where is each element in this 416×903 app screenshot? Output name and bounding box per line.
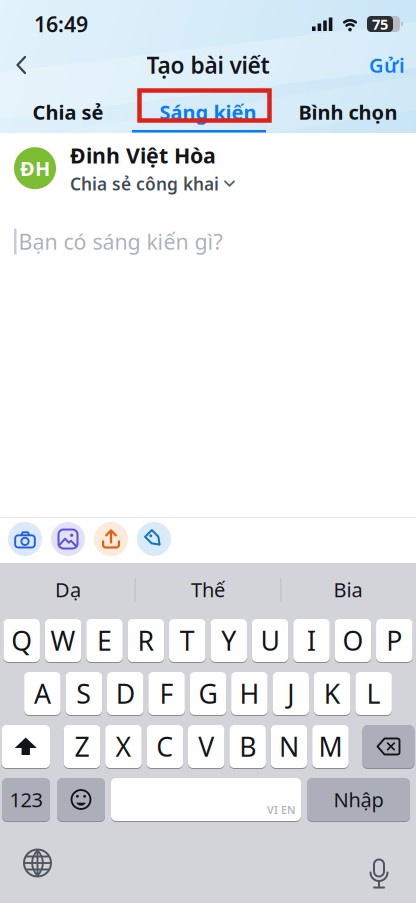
staticText: Tạo bài viết	[146, 50, 269, 80]
staticText: P	[386, 623, 402, 658]
button[interactable]: 123	[2, 777, 50, 821]
button[interactable]: Camera	[8, 522, 42, 556]
staticText: K	[324, 676, 341, 711]
button[interactable]: F	[148, 671, 185, 715]
staticText: Z	[75, 729, 90, 764]
staticText: M	[318, 729, 342, 764]
button[interactable]: Upload	[94, 522, 128, 556]
staticText: ĐH	[20, 155, 50, 181]
button[interactable]: Gửi	[369, 52, 416, 78]
staticText: T	[180, 623, 195, 658]
staticText: H	[239, 676, 259, 711]
button[interactable]: R	[128, 618, 164, 662]
button[interactable]: A	[24, 671, 61, 715]
button[interactable]: B	[229, 724, 266, 768]
staticText: Chia sẻ công khai	[70, 172, 219, 195]
staticText: Gửi	[369, 52, 405, 78]
button[interactable]: ĐH	[0, 133, 416, 195]
staticText: X	[115, 729, 131, 764]
button[interactable]: L	[355, 671, 392, 715]
staticText: Bình chọn	[298, 99, 397, 125]
staticText: A	[34, 676, 51, 711]
button[interactable]: Nhập	[307, 777, 410, 821]
button[interactable]: Dictation	[370, 849, 416, 878]
button[interactable]: D	[107, 671, 143, 715]
staticText: 75	[372, 14, 388, 34]
button[interactable]: Bia	[278, 576, 416, 603]
staticText: VI EN	[267, 803, 295, 817]
staticText: V	[198, 729, 214, 764]
button[interactable]: N	[271, 724, 307, 768]
staticText: Bạn có sáng kiến gì?	[18, 227, 222, 256]
staticText: D	[116, 676, 135, 711]
staticText: Y	[221, 623, 236, 658]
button[interactable]: K	[314, 671, 350, 715]
staticText: F	[160, 676, 174, 711]
button[interactable]: Q	[3, 618, 40, 662]
staticText: N	[279, 729, 299, 764]
staticText: E	[97, 623, 112, 658]
button[interactable]: Z	[64, 724, 100, 768]
staticText: Thế	[191, 576, 225, 603]
button[interactable]: S	[66, 671, 102, 715]
staticText: Bia	[333, 576, 362, 603]
button[interactable]: Dạ	[0, 576, 138, 603]
button[interactable]: Thế	[138, 576, 278, 603]
staticText: L	[367, 676, 381, 711]
staticText: B	[239, 729, 256, 764]
staticText: I	[307, 623, 316, 658]
staticText: Dạ	[55, 576, 81, 603]
staticText: U	[261, 623, 280, 658]
button[interactable]: Tag	[137, 522, 171, 556]
button[interactable]: Chia sẻ	[0, 99, 138, 125]
staticText: S	[76, 676, 91, 711]
staticText: G	[198, 676, 217, 711]
button[interactable]: G	[190, 671, 226, 715]
staticText: 16:49	[34, 10, 88, 38]
button[interactable]: Shift	[1, 724, 50, 768]
button[interactable]: P	[376, 618, 412, 662]
button[interactable]: I	[293, 618, 330, 662]
button[interactable]: Space	[111, 777, 301, 821]
staticText: R	[137, 623, 154, 658]
staticText: O	[342, 623, 363, 658]
button[interactable]: Delete	[362, 724, 414, 768]
staticText: Q	[11, 623, 32, 658]
button[interactable]: C	[147, 724, 183, 768]
staticText: Chia sẻ	[32, 99, 103, 125]
button[interactable]: Y	[210, 618, 247, 662]
button[interactable]: Emoji	[57, 777, 105, 821]
button[interactable]: W	[45, 618, 81, 662]
button[interactable]: Photo library	[51, 522, 85, 556]
staticText: Đinh Việt Hòa	[70, 141, 216, 169]
button[interactable]: U	[252, 618, 288, 662]
button[interactable]: V	[188, 724, 224, 768]
button[interactable]: H	[231, 671, 268, 715]
button[interactable]: M	[312, 724, 349, 768]
button[interactable]: Next keyboard	[0, 849, 51, 876]
button[interactable]: O	[335, 618, 371, 662]
staticText: Nhập	[333, 786, 383, 813]
button[interactable]: T	[169, 618, 206, 662]
staticText: Sáng kiến	[159, 99, 256, 125]
staticText: W	[51, 623, 76, 658]
staticText: J	[287, 676, 294, 711]
button[interactable]: J	[273, 671, 309, 715]
button[interactable]: Back	[0, 56, 27, 74]
staticText: C	[156, 729, 173, 764]
staticText: 123	[9, 786, 42, 813]
button[interactable]: Bình chọn	[278, 99, 416, 125]
button[interactable]: X	[105, 724, 142, 768]
button[interactable]: Sáng kiến	[138, 99, 278, 125]
button[interactable]: E	[86, 618, 123, 662]
